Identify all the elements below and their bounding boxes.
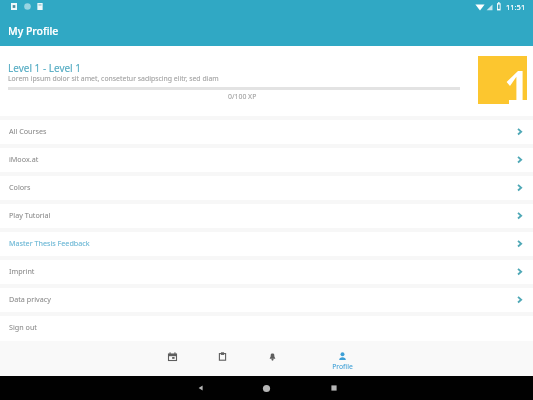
button[interactable]: Sign out	[0, 312, 533, 340]
staticText: Imprint	[9, 266, 35, 276]
button[interactable]: iMoox.at	[0, 144, 533, 172]
staticText: Colors	[9, 182, 31, 192]
button[interactable]: Calendar	[148, 341, 196, 376]
button[interactable]: Data privacy	[0, 284, 533, 312]
staticText: My Profile	[8, 24, 59, 38]
button[interactable]: Recents	[312, 376, 356, 400]
staticText: Master Thesis Feedback	[9, 238, 90, 248]
staticText: Play Tutorial	[9, 210, 51, 220]
button[interactable]: Back	[178, 376, 222, 400]
button[interactable]: Profile	[318, 341, 366, 376]
staticText: Level 1 - Level 1	[8, 61, 82, 75]
button[interactable]: Master Thesis Feedback	[0, 228, 533, 256]
staticText: 11:51	[506, 2, 526, 12]
staticText: Data privacy	[9, 294, 51, 304]
button[interactable]: Tasks	[198, 341, 246, 376]
button[interactable]: Play Tutorial	[0, 200, 533, 228]
staticText: iMoox.at	[9, 154, 39, 164]
button[interactable]: Imprint	[0, 256, 533, 284]
staticText: Lorem ipsum dolor sit amet, consetetur s…	[8, 74, 219, 83]
button[interactable]: All Courses	[0, 116, 533, 144]
button[interactable]: Home	[244, 376, 288, 400]
button[interactable]: Colors	[0, 172, 533, 200]
staticText: All Courses	[9, 126, 47, 136]
button[interactable]: Notifications	[248, 341, 296, 376]
staticText: Sign out	[9, 322, 37, 332]
staticText: 0/100 XP	[228, 92, 257, 101]
staticText: Profile	[332, 362, 353, 371]
